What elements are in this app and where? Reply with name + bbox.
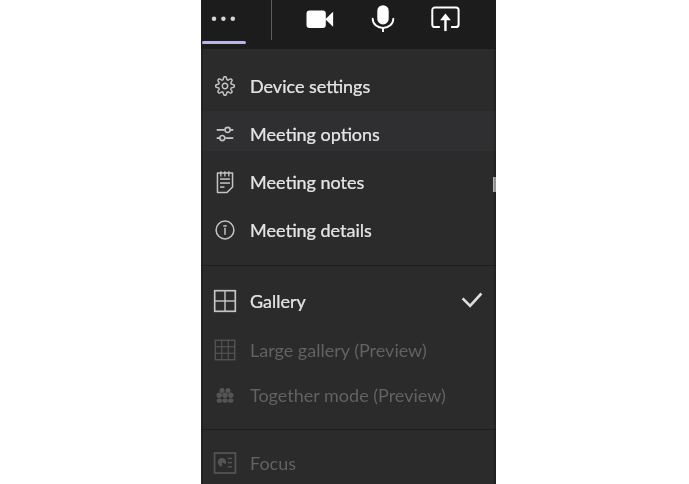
staticText: Meeting notes [250,171,365,193]
button[interactable]: Together mode (Preview) [201,372,496,417]
staticText: Meeting options [250,123,380,145]
button[interactable]: Focus [201,442,496,484]
button[interactable]: Device settings [201,62,496,110]
button[interactable]: Meeting details [201,206,496,254]
staticText: Gallery [250,290,306,312]
button[interactable]: Large gallery (Preview) [201,326,496,373]
button[interactable]: Meeting options [201,110,496,158]
button[interactable]: Mute microphone [357,0,409,49]
button[interactable]: Gallery [201,277,496,325]
button[interactable]: Share content [419,0,471,49]
button[interactable]: Turn camera off [295,0,347,49]
button[interactable]: Meeting notes [201,158,496,206]
staticText: Meeting details [250,219,372,241]
staticText: Together mode (Preview) [250,384,446,406]
staticText: Large gallery (Preview) [250,339,427,361]
staticText: Focus [250,452,297,474]
staticText: Device settings [250,75,371,97]
button[interactable]: More options [203,0,269,49]
